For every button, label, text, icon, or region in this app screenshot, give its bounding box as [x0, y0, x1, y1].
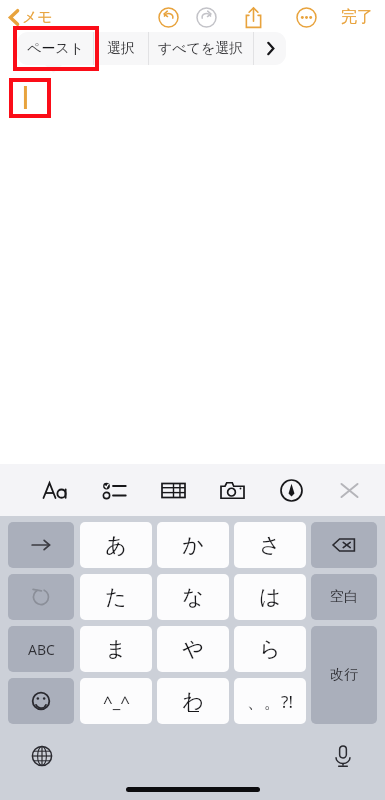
staticText: は: [259, 584, 281, 610]
button[interactable]: か: [157, 522, 229, 568]
button[interactable]: ら: [234, 626, 306, 672]
button[interactable]: Redo: [190, 1, 222, 33]
button[interactable]: Table: [154, 471, 192, 509]
staticText: ABC: [28, 640, 55, 659]
staticText: た: [105, 584, 127, 610]
button[interactable]: 選択: [94, 32, 148, 65]
staticText: 完了: [341, 7, 373, 27]
staticText: 改行: [330, 666, 358, 684]
button[interactable]: ま: [80, 626, 152, 672]
staticText: わ: [182, 688, 204, 714]
button[interactable]: Markup: [272, 471, 310, 509]
button[interactable]: は: [234, 574, 306, 620]
button[interactable]: Change keyboard: [24, 738, 60, 774]
button[interactable]: More options: [290, 1, 322, 33]
staticText: 空白: [330, 588, 358, 606]
button[interactable]: More menu items: [254, 32, 286, 65]
button[interactable]: 改行: [311, 626, 377, 724]
button[interactable]: な: [157, 574, 229, 620]
staticText: 選択: [107, 40, 135, 58]
staticText: ^_^: [103, 690, 130, 713]
button[interactable]: Move cursor right: [8, 522, 74, 568]
staticText: や: [182, 636, 204, 662]
staticText: さ: [259, 532, 281, 558]
staticText: すべてを選択: [158, 40, 244, 58]
button[interactable]: Back to Notes: [4, 6, 57, 29]
button[interactable]: ^_^: [80, 678, 152, 724]
button[interactable]: 完了: [335, 4, 379, 30]
button[interactable]: Text format: [36, 471, 74, 509]
staticText: ま: [105, 636, 127, 662]
staticText: な: [182, 584, 204, 610]
button[interactable]: Emoji keyboard: [8, 678, 74, 724]
staticText: か: [182, 532, 204, 558]
button[interactable]: 空白: [311, 574, 377, 620]
staticText: 、。?!: [247, 690, 293, 713]
button[interactable]: Checklist: [95, 471, 133, 509]
button[interactable]: ペースト: [17, 32, 93, 65]
staticText: あ: [105, 532, 127, 558]
button[interactable]: Undo: [8, 574, 74, 620]
staticText: ら: [259, 636, 281, 662]
button[interactable]: すべてを選択: [149, 32, 253, 65]
staticText: ペースト: [27, 40, 84, 58]
staticText: メモ: [22, 8, 53, 27]
button[interactable]: わ: [157, 678, 229, 724]
button[interactable]: ABC: [8, 626, 74, 672]
button[interactable]: Camera: [213, 471, 251, 509]
button[interactable]: た: [80, 574, 152, 620]
button[interactable]: Share: [237, 1, 269, 33]
button[interactable]: 、。?!: [234, 678, 306, 724]
button[interactable]: Delete: [311, 522, 377, 568]
button[interactable]: Undo: [152, 1, 184, 33]
button[interactable]: さ: [234, 522, 306, 568]
button[interactable]: や: [157, 626, 229, 672]
button[interactable]: Dictation: [325, 738, 361, 774]
button[interactable]: Hide keyboard: [330, 471, 368, 509]
button[interactable]: あ: [80, 522, 152, 568]
